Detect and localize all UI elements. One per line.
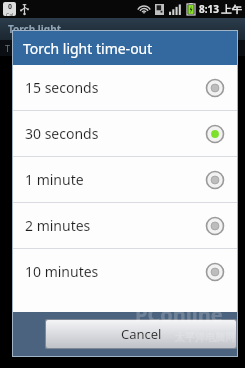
button[interactable]: 30 seconds (13, 111, 237, 156)
staticText: T (5, 42, 11, 54)
button[interactable]: 2 minutes (13, 203, 237, 248)
staticText: Torch light (8, 22, 61, 36)
button[interactable]: 1 minute (13, 157, 237, 202)
button[interactable]: Cancel (46, 320, 236, 348)
staticText: PConline (135, 301, 223, 328)
staticText: 太平洋电脑网 (175, 331, 235, 344)
staticText: 1 minute (25, 170, 84, 189)
staticText: 2 minutes (25, 216, 91, 235)
staticText: 15 seconds (25, 78, 99, 97)
staticText: Torch light time-out (23, 39, 153, 58)
button[interactable]: 10 minutes (13, 249, 237, 294)
button[interactable]: 15 seconds (13, 65, 237, 110)
staticText: 10 minutes (25, 262, 99, 281)
staticText: Cal (6, 12, 14, 16)
staticText: 0 (8, 2, 13, 12)
staticText: Cancel (121, 325, 162, 343)
staticText: 30 seconds (25, 124, 99, 143)
staticText: 8:13 上午 (199, 2, 242, 16)
